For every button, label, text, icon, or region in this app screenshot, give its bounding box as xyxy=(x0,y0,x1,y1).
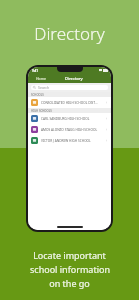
staticText: CONSOLIDATED HIGH SCHOOL DIST… xyxy=(41,101,105,105)
staticText: school information xyxy=(30,263,110,275)
staticText: 9:41 xyxy=(32,69,38,73)
button[interactable]: CARL SANDBURG HIGH SCHOOL xyxy=(28,113,111,124)
other: Open details xyxy=(105,128,108,131)
button[interactable]: Search xyxy=(31,85,108,90)
staticText: Directory xyxy=(65,76,83,81)
other: Open details xyxy=(105,101,108,104)
other: Open details xyxy=(105,139,108,142)
button[interactable]: Home xyxy=(28,74,53,83)
staticText: Home xyxy=(36,76,46,81)
button[interactable]: CONSOLIDATED HIGH SCHOOL DIST… xyxy=(28,97,111,108)
staticText: Directory xyxy=(34,22,105,45)
button[interactable]: AMOS ALONZO STAGG HIGH SCHOOL xyxy=(28,124,111,135)
staticText: SCHOOLS xyxy=(31,93,44,97)
staticText: on the go xyxy=(49,277,90,289)
staticText: Search xyxy=(38,85,50,90)
staticText: HIGH SCHOOLS xyxy=(31,109,52,113)
other: Open details xyxy=(105,117,108,120)
staticText: CARL SANDBURG HIGH SCHOOL xyxy=(41,117,105,121)
staticText: AMOS ALONZO STAGG HIGH SCHOOL xyxy=(41,128,105,132)
button[interactable]: Directory xyxy=(53,74,95,83)
staticText: Locate important xyxy=(33,249,106,261)
button[interactable]: VICTOR J ANDREW HIGH SCHOOL xyxy=(28,135,111,146)
staticText: VICTOR J ANDREW HIGH SCHOOL xyxy=(41,139,105,143)
